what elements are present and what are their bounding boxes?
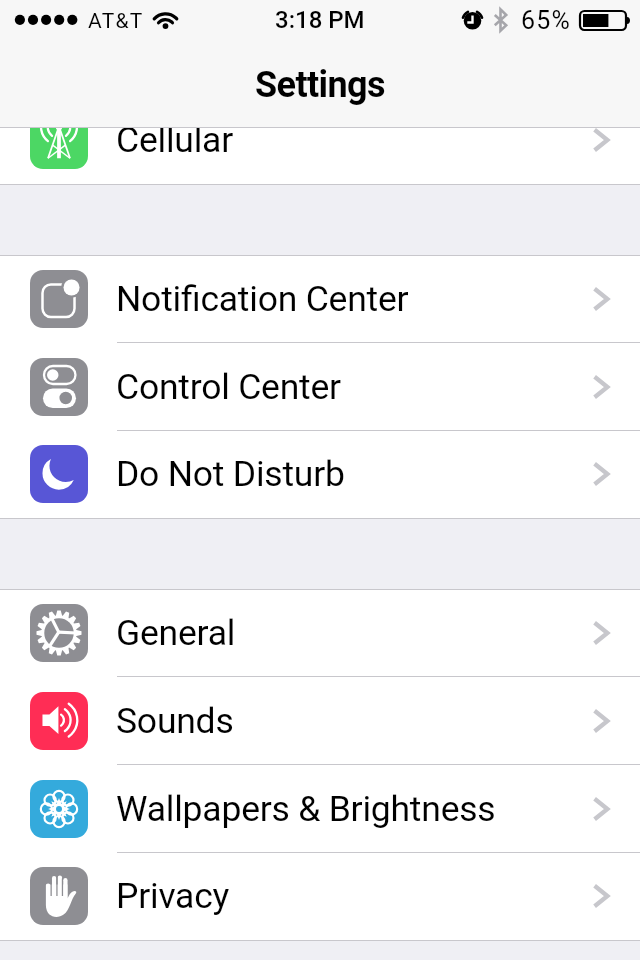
button[interactable]: Notification Center [0, 256, 640, 343]
button[interactable]: Control Center [0, 343, 640, 431]
staticText: Control Center [116, 366, 341, 408]
staticText: AT&T [88, 9, 144, 34]
staticText: Do Not Disturb [116, 453, 345, 495]
staticText: Privacy [116, 875, 230, 917]
staticText: Settings [255, 64, 385, 106]
staticText: 3:18 PM [275, 6, 365, 34]
staticText: Cellular [116, 119, 233, 161]
staticText: Notification Center [116, 278, 409, 320]
staticText: General [116, 612, 236, 654]
button[interactable]: Do Not Disturb [0, 431, 640, 518]
button[interactable]: Wallpapers & Brightness [0, 765, 640, 853]
button[interactable]: Cellular [0, 96, 640, 184]
staticText: 65% [521, 6, 572, 35]
button[interactable]: Sounds [0, 677, 640, 765]
staticText: Sounds [116, 700, 234, 742]
button[interactable]: Privacy [0, 853, 640, 940]
button[interactable]: General [0, 590, 640, 677]
staticText: Wallpapers & Brightness [116, 788, 496, 830]
